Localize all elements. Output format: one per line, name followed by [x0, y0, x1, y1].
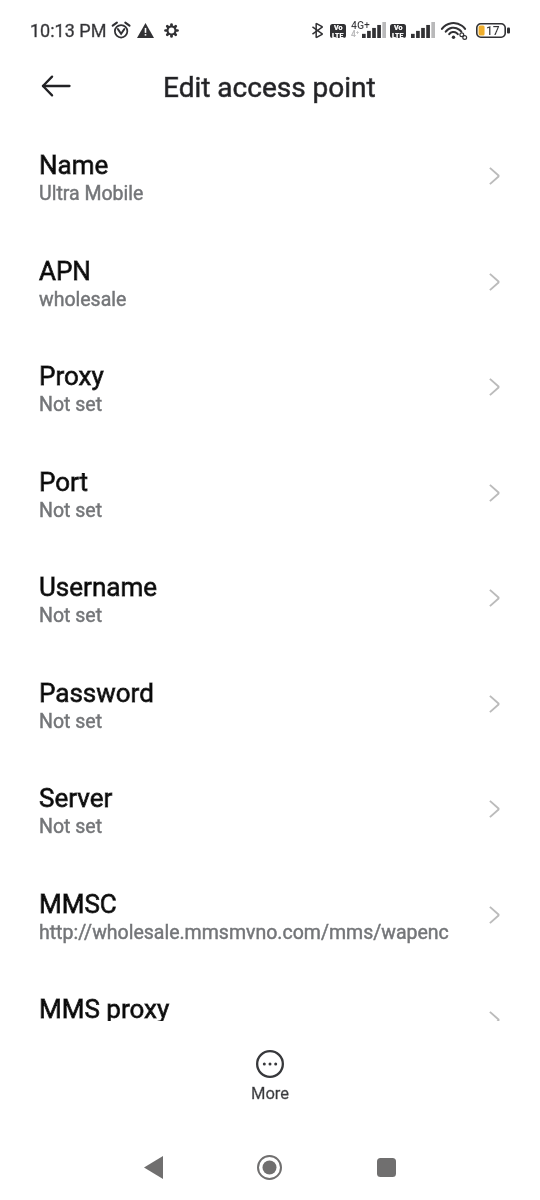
staticText: MMSC: [39, 889, 117, 919]
staticText: 4⁺: [351, 29, 360, 39]
staticText: Name: [39, 150, 109, 180]
button[interactable]: APN: [0, 220, 540, 326]
staticText: Not set: [39, 710, 103, 733]
staticText: Not set: [39, 604, 103, 627]
staticText: Ultra Mobile: [39, 182, 144, 205]
staticText: Not set: [39, 393, 103, 416]
staticText: Not set: [39, 393, 103, 416]
button[interactable]: More: [230, 1040, 310, 1108]
button[interactable]: MMS proxy: [0, 958, 540, 1021]
staticText: 10:13 PM: [30, 20, 107, 41]
staticText: MMSC: [39, 889, 117, 919]
staticText: MMS proxy: [39, 994, 170, 1021]
staticText: http://wholesale.mmsmvno.com/mms/wapenc: [39, 921, 449, 944]
staticText: Ultra Mobile: [39, 182, 144, 205]
button[interactable]: Home: [242, 1140, 296, 1194]
staticText: Not set: [39, 710, 103, 733]
staticText: Password: [39, 678, 154, 708]
button[interactable]: Server: [0, 747, 540, 853]
staticText: Not set: [39, 815, 103, 838]
button[interactable]: Recent apps: [359, 1140, 413, 1194]
staticText: Username: [39, 572, 157, 602]
staticText: Server: [39, 783, 113, 813]
staticText: Port: [39, 467, 89, 497]
staticText: Vo: [394, 24, 403, 32]
button[interactable]: Password: [0, 642, 540, 748]
staticText: Name: [39, 150, 109, 180]
button[interactable]: Proxy: [0, 325, 540, 431]
staticText: APN: [39, 256, 91, 286]
button[interactable]: Username: [0, 536, 540, 642]
button[interactable]: Back: [126, 1140, 180, 1194]
staticText: LTE: [332, 32, 344, 38]
staticText: Edit access point: [163, 71, 376, 104]
staticText: MMS proxy: [39, 994, 170, 1021]
staticText: Vo: [334, 24, 343, 32]
button[interactable]: Navigate up: [28, 58, 84, 114]
staticText: Not set: [39, 499, 103, 522]
staticText: 10:13 PM: [30, 20, 107, 41]
staticText: Server: [39, 783, 113, 813]
staticText: wholesale: [39, 288, 127, 311]
staticText: 4G+: [351, 19, 370, 31]
button[interactable]: Port: [0, 431, 540, 537]
staticText: Proxy: [39, 361, 104, 391]
staticText: Proxy: [39, 361, 104, 391]
staticText: Not set: [39, 499, 103, 522]
button[interactable]: MMSC: [0, 853, 540, 959]
staticText: More: [251, 1084, 290, 1103]
staticText: wholesale: [39, 288, 127, 311]
staticText: 17: [486, 24, 500, 38]
staticText: Port: [39, 467, 89, 497]
staticText: LTE: [392, 32, 404, 38]
staticText: Password: [39, 678, 154, 708]
staticText: Not set: [39, 815, 103, 838]
staticText: More: [251, 1084, 290, 1103]
staticText: Username: [39, 572, 157, 602]
staticText: Edit access point: [163, 71, 376, 104]
staticText: Not set: [39, 604, 103, 627]
button[interactable]: Name: [0, 114, 540, 220]
staticText: APN: [39, 256, 91, 286]
staticText: http://wholesale.mmsmvno.com/mms/wapenc: [39, 921, 449, 944]
